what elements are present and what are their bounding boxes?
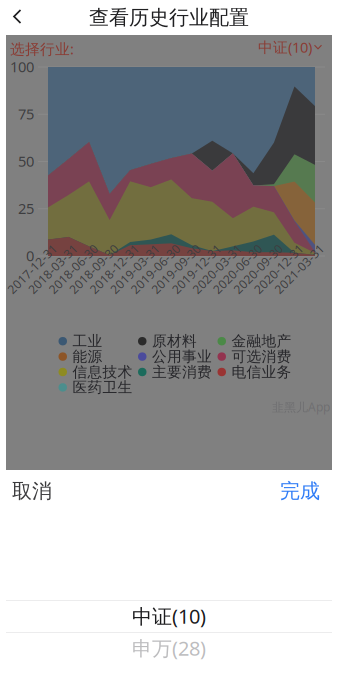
staticText: 2021-03-31 xyxy=(271,270,335,286)
button[interactable]: 申万(28) xyxy=(6,632,332,664)
staticText: 工业 xyxy=(72,332,102,350)
staticText: 金融地产 xyxy=(231,332,291,350)
staticText: 2020-06-30 xyxy=(209,270,273,286)
staticText: 2020-12-31 xyxy=(250,270,314,286)
button[interactable]: 中证(10) xyxy=(252,39,322,55)
staticText: 0 xyxy=(26,246,34,265)
staticText: 2017-12-31 xyxy=(4,270,68,286)
staticText: 申万(28) xyxy=(132,635,206,661)
staticText: 2018-12-31 xyxy=(86,270,150,286)
staticText: 可选消费 xyxy=(231,348,291,366)
staticText: 医药卫生 xyxy=(72,378,132,396)
staticText: 2018-09-30 xyxy=(66,270,130,286)
staticText: 75 xyxy=(18,104,34,123)
staticText: 中证(10) xyxy=(132,603,206,629)
staticText: 2019-06-30 xyxy=(127,270,191,286)
button[interactable]: 中证(10) xyxy=(6,600,332,632)
staticText: 韭黑儿App xyxy=(272,399,330,415)
staticText: 电信业务 xyxy=(231,363,291,381)
staticText: 原材料 xyxy=(152,332,197,350)
staticText: 2019-09-30 xyxy=(148,270,212,286)
button[interactable]: 返回 xyxy=(0,0,36,33)
staticText: 2019-12-31 xyxy=(168,270,232,286)
staticText: 25 xyxy=(18,198,34,218)
staticText: 公用事业 xyxy=(152,348,212,366)
staticText: 中证(10) xyxy=(258,37,312,57)
staticText: 50 xyxy=(18,151,34,171)
staticText: 100 xyxy=(10,57,34,76)
staticText: 2018-06-30 xyxy=(45,270,109,286)
staticText: 选择行业: xyxy=(10,39,74,58)
staticText: 2019-03-31 xyxy=(107,270,171,286)
staticText: 2020-03-31 xyxy=(189,270,253,286)
staticText: 能源 xyxy=(72,348,102,366)
button[interactable]: 完成 xyxy=(250,476,320,506)
staticText: 完成 xyxy=(280,479,320,503)
staticText: 2020-09-30 xyxy=(230,270,294,286)
staticText: 主要消费 xyxy=(152,363,212,381)
staticText: 2018-03-31 xyxy=(24,270,88,286)
staticText: 取消 xyxy=(12,479,52,503)
button[interactable]: 取消 xyxy=(12,476,82,506)
staticText: 查看历史行业配置 xyxy=(89,5,249,30)
staticText: 信息技术 xyxy=(72,363,132,381)
